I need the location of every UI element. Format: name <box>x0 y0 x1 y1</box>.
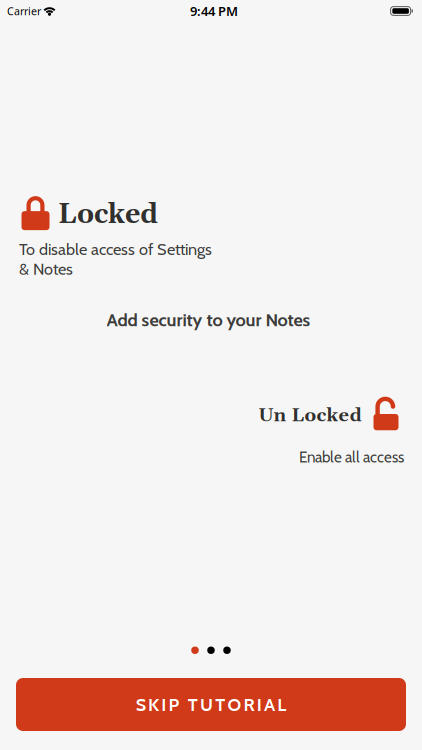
staticText: Carrier <box>7 4 41 18</box>
staticText: Locked <box>58 198 158 232</box>
staticText: Enable all access <box>299 448 404 466</box>
staticText: T <box>188 694 198 715</box>
staticText: U <box>200 694 213 715</box>
staticText: O <box>227 694 241 715</box>
staticText: To disable access of Settings & Notes <box>19 239 212 279</box>
button[interactable]: S <box>16 678 406 731</box>
staticText: A <box>264 694 275 715</box>
staticText: Un Locked <box>258 404 361 428</box>
staticText: L <box>277 694 286 715</box>
staticText: T <box>215 694 225 715</box>
staticText: K <box>148 694 159 715</box>
staticText: S <box>136 694 146 715</box>
staticText: R <box>244 694 255 715</box>
staticText: Add security to your Notes <box>106 309 310 331</box>
staticText: P <box>168 694 179 715</box>
staticText: I <box>257 694 262 715</box>
staticText: 9:44 PM <box>190 2 238 20</box>
staticText: I <box>161 694 166 715</box>
